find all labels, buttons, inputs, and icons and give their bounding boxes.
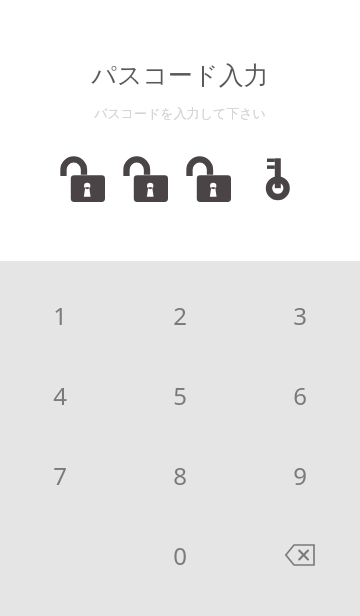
button[interactable]: 0: [120, 515, 240, 595]
button[interactable]: 4: [0, 355, 120, 435]
staticText: パスコード入力: [91, 60, 269, 91]
staticText: 6: [293, 379, 307, 412]
button[interactable]: 6: [240, 355, 360, 435]
staticText: パスコードを入力して下さい: [94, 105, 266, 121]
staticText: 3: [293, 299, 307, 332]
button[interactable]: 9: [240, 435, 360, 515]
button[interactable]: 2: [120, 275, 240, 355]
button[interactable]: 3: [240, 275, 360, 355]
button[interactable]: Delete: [240, 515, 360, 595]
staticText: 5: [173, 379, 187, 412]
staticText: 9: [293, 459, 307, 492]
button[interactable]: 1: [0, 275, 120, 355]
staticText: 1: [53, 299, 67, 332]
staticText: 0: [173, 539, 187, 572]
button[interactable]: 8: [120, 435, 240, 515]
button[interactable]: 5: [120, 355, 240, 435]
staticText: 7: [53, 459, 67, 492]
staticText: 8: [173, 459, 187, 492]
staticText: 2: [173, 299, 187, 332]
button[interactable]: 7: [0, 435, 120, 515]
staticText: 4: [53, 379, 67, 412]
